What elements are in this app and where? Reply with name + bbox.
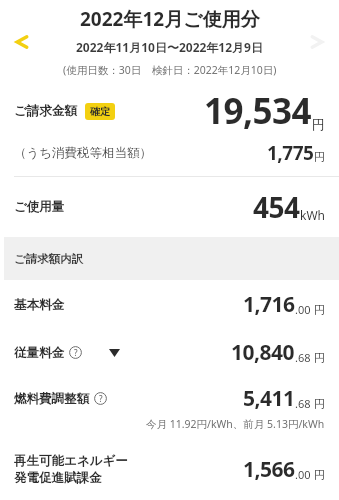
staticText: 2022年11月10日〜2022年12月9日 — [76, 39, 263, 55]
staticText: .68 — [295, 396, 311, 411]
staticText: 円 — [314, 468, 325, 482]
staticText: 従量料金 — [14, 345, 64, 361]
staticText: 円 — [314, 397, 325, 411]
staticText: 5,411 — [243, 384, 295, 413]
staticText: 確定 — [90, 105, 110, 118]
button[interactable]: 従量料金 — [0, 329, 339, 376]
staticText: (使用日数：30日 検針日：2022年12月10日) — [63, 63, 277, 77]
staticText: ご請求金額 — [14, 103, 77, 119]
staticText: 1,566 — [243, 455, 295, 484]
button[interactable]: 基本料金 — [0, 280, 339, 329]
button[interactable]: ヘルプ — [94, 392, 107, 405]
staticText: 2022年12月ご使用分 — [80, 6, 260, 32]
staticText: 再生可能エネルギー 発電促進賦課金 — [14, 453, 128, 485]
staticText: 今月 11.92円/kWh、前月 5.13円/kWh — [146, 417, 325, 431]
staticText: 10,840 — [231, 338, 295, 367]
staticText: 燃料費調整額 — [14, 391, 89, 407]
staticText: ご使用量 — [14, 199, 65, 215]
other: 展開 — [104, 343, 124, 363]
staticText: 円 — [312, 116, 325, 132]
staticText: ご請求額内訳 — [14, 252, 84, 266]
button[interactable]: 次の月 — [301, 26, 333, 58]
staticText: 円 — [314, 351, 325, 365]
staticText: 1,716 — [243, 290, 295, 319]
staticText: ? — [99, 393, 103, 404]
button[interactable]: ヘルプ — [69, 346, 82, 359]
staticText: 454 — [253, 188, 300, 226]
staticText: 円 — [314, 150, 325, 164]
staticText: 1,775 — [267, 140, 314, 166]
staticText: （うち消費税等相当額） — [14, 145, 153, 161]
button[interactable]: 前の月 — [6, 26, 38, 58]
staticText: 19,534 — [204, 87, 312, 135]
staticText: kWh — [300, 207, 325, 223]
staticText: .00 — [295, 302, 311, 317]
staticText: .00 — [295, 467, 311, 482]
staticText: ? — [74, 347, 78, 358]
staticText: 円 — [314, 303, 325, 317]
staticText: 基本料金 — [14, 297, 64, 313]
staticText: .68 — [295, 350, 311, 365]
